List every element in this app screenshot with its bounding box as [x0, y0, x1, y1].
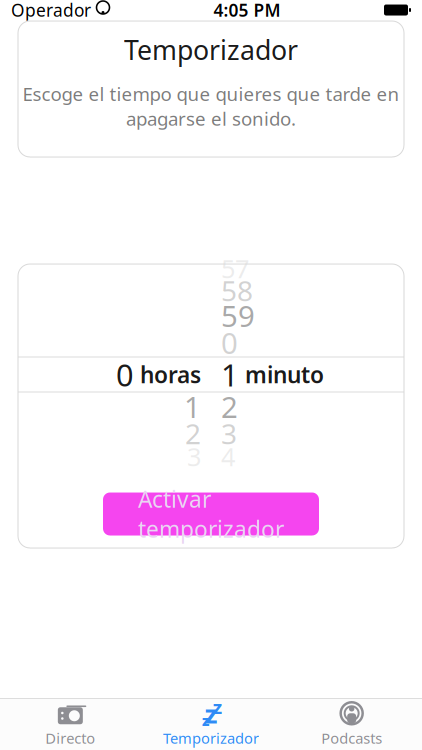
staticText: Z: [205, 702, 217, 729]
staticText: 2: [221, 387, 238, 426]
button[interactable]: z: [141, 699, 281, 749]
staticText: Operador: [11, 0, 91, 21]
staticText: Temporizador: [124, 32, 298, 67]
staticText: 2: [185, 415, 201, 452]
staticText: 4:05 PM: [213, 0, 280, 21]
staticText: Podcasts: [321, 728, 382, 748]
staticText: 58: [221, 272, 253, 309]
staticText: 57: [221, 252, 249, 285]
staticText: 3: [187, 440, 201, 473]
staticText: Temporizador: [163, 728, 259, 748]
staticText: Directo: [45, 728, 95, 748]
staticText: 1: [221, 354, 239, 395]
staticText: minuto: [245, 359, 324, 389]
staticText: Activar temporizador: [138, 484, 284, 544]
button[interactable]: Activar temporizador: [103, 492, 319, 535]
staticText: Z: [213, 698, 222, 718]
button[interactable]: Directo: [0, 699, 141, 749]
button[interactable]: Podcasts: [281, 699, 422, 749]
staticText: 0: [221, 323, 238, 362]
staticText: apagarse el sonido.: [126, 106, 296, 131]
staticText: Escoge el tiempo que quieres que tarde e…: [22, 81, 399, 106]
staticText: 1: [184, 387, 201, 426]
staticText: 3: [221, 415, 237, 452]
staticText: z: [202, 710, 209, 730]
staticText: horas: [140, 359, 201, 389]
staticText: 0: [116, 354, 134, 395]
staticText: 59: [221, 296, 255, 335]
staticText: 4: [221, 440, 235, 473]
